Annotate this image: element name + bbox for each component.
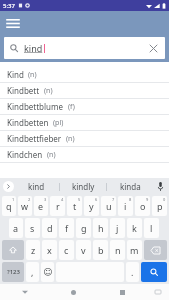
button[interactable]: w [18, 196, 32, 216]
staticText: Kindbetten [7, 117, 49, 128]
button[interactable]: kind [4, 37, 165, 59]
button[interactable]: Kindbetten [0, 115, 169, 130]
staticText: kind [24, 42, 43, 54]
button[interactable]: kind [14, 178, 59, 195]
staticText: Kindchen [7, 149, 43, 160]
staticText: 4 [61, 197, 64, 202]
button[interactable]: kindly [60, 178, 106, 195]
button[interactable]: , [26, 262, 39, 282]
staticText: (n) [66, 134, 75, 144]
button[interactable]: Kindbettblume [0, 99, 169, 114]
staticText: , [31, 266, 34, 278]
staticText: . [131, 266, 134, 278]
button[interactable]: h [93, 218, 108, 238]
button[interactable]: ☺ [41, 262, 54, 282]
button[interactable]: Backspace [144, 240, 167, 260]
staticText: i [124, 200, 127, 212]
staticText: f [65, 222, 69, 234]
button[interactable]: q [2, 196, 16, 216]
button[interactable]: More suggestions [3, 181, 14, 192]
staticText: (f) [68, 102, 75, 112]
button[interactable]: d [42, 218, 57, 238]
staticText: Kind [7, 69, 24, 80]
button[interactable]: o [135, 196, 150, 216]
staticText: 1 [12, 197, 15, 202]
staticText: o [140, 200, 146, 212]
staticText: x [47, 244, 52, 256]
button[interactable]: x [42, 240, 57, 260]
button[interactable]: Kind [0, 67, 169, 82]
button[interactable]: kinda [107, 178, 153, 195]
button[interactable]: Open navigation menu [4, 14, 22, 32]
staticText: (n) [44, 86, 53, 96]
staticText: 6 [95, 197, 98, 202]
staticText: (n) [28, 70, 37, 80]
button[interactable]: k [127, 218, 142, 238]
staticText: w [21, 200, 29, 212]
staticText: e [38, 200, 44, 212]
staticText: g [81, 222, 87, 234]
button[interactable]: Kindchen [0, 147, 169, 162]
staticText: ?123 [7, 268, 20, 276]
staticText: m [130, 244, 139, 256]
staticText: y [89, 200, 94, 212]
button[interactable]: c [59, 240, 74, 260]
staticText: 9 [146, 197, 149, 202]
button[interactable]: Voice input [153, 178, 167, 195]
staticText: s [30, 222, 35, 234]
staticText: z [31, 244, 36, 256]
staticText: (n) [47, 150, 56, 160]
staticText: kinda [120, 181, 141, 192]
button[interactable]: z [26, 240, 40, 260]
button[interactable]: Kindbettfieber [0, 131, 169, 146]
button[interactable]: s [25, 218, 40, 238]
button[interactable]: i [118, 196, 133, 216]
staticText: k [132, 222, 137, 234]
button[interactable]: a [9, 218, 23, 238]
button[interactable]: Hide keyboard [0, 284, 49, 300]
staticText: 8 [129, 197, 132, 202]
staticText: d [47, 222, 53, 234]
button[interactable]: p [152, 196, 167, 216]
button[interactable]: Recent apps [98, 284, 147, 300]
button[interactable]: e [34, 196, 48, 216]
button[interactable]: l [144, 218, 159, 238]
staticText: r [56, 200, 60, 212]
button[interactable]: Kindbett [0, 83, 169, 98]
staticText: j [116, 222, 119, 234]
button[interactable]: b [93, 240, 108, 260]
staticText: kind [28, 181, 45, 192]
button[interactable]: Shift [2, 240, 24, 260]
staticText: v [81, 244, 86, 256]
button[interactable]: y [84, 196, 99, 216]
staticText: h [98, 222, 104, 234]
button[interactable]: Search [141, 262, 167, 282]
staticText: 3 [44, 197, 47, 202]
button[interactable]: r [50, 196, 65, 216]
staticText: 0 [163, 197, 166, 202]
button[interactable]: . [126, 262, 139, 282]
staticText: Kindbettblume [7, 101, 64, 112]
staticText: a [13, 222, 19, 234]
staticText: p [157, 200, 163, 212]
button[interactable]: m [127, 240, 142, 260]
button[interactable]: f [59, 218, 74, 238]
staticText: b [98, 244, 104, 256]
staticText: n [115, 244, 121, 256]
button[interactable]: t [67, 196, 82, 216]
button[interactable]: j [110, 218, 125, 238]
staticText: t [73, 200, 77, 212]
staticText: l [150, 222, 153, 234]
button[interactable]: u [101, 196, 116, 216]
button[interactable]: Switch input method [147, 284, 169, 300]
button[interactable]: g [76, 218, 91, 238]
button[interactable]: Clear search [145, 40, 161, 56]
staticText: kindly [72, 181, 95, 192]
button[interactable]: v [76, 240, 91, 260]
button[interactable]: Symbols [2, 262, 24, 282]
button[interactable]: n [110, 240, 125, 260]
staticText: 2 [28, 197, 31, 202]
staticText: q [6, 200, 12, 212]
button[interactable]: Home [49, 284, 98, 300]
